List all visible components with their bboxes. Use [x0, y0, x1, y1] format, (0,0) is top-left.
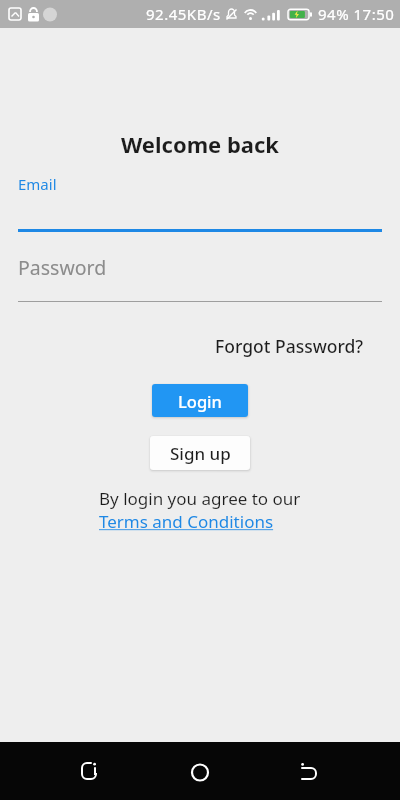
- button[interactable]: [18, 246, 382, 303]
- button[interactable]: [294, 756, 324, 786]
- staticText: 92.45KB/s: [146, 4, 221, 24]
- staticText: Sign up: [170, 442, 231, 465]
- button[interactable]: [18, 172, 382, 232]
- button[interactable]: [185, 756, 215, 786]
- staticText: 94% 17:50: [318, 4, 395, 24]
- staticText: Password: [18, 254, 107, 281]
- staticText: By login you agree to our: [99, 487, 301, 510]
- button[interactable]: Forgot Password?: [215, 334, 364, 358]
- staticText: Login: [178, 390, 222, 412]
- button[interactable]: Sign up: [150, 436, 250, 470]
- staticText: Email: [18, 174, 57, 194]
- button[interactable]: Login: [152, 384, 248, 417]
- staticText: Welcome back: [121, 129, 280, 159]
- button[interactable]: [74, 756, 104, 786]
- button[interactable]: Terms and Conditions: [99, 510, 274, 533]
